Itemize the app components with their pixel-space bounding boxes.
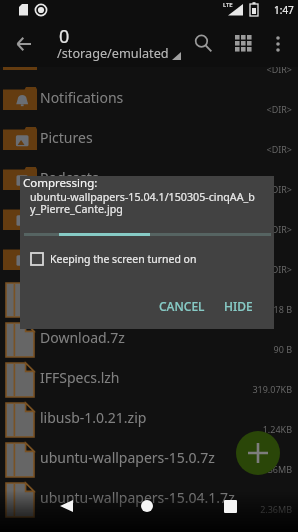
button[interactable]: Documents: [0, 278, 298, 318]
staticText: Music: [40, 248, 79, 267]
staticText: 1.24KB: [262, 423, 292, 435]
staticText: HIDE: [224, 298, 253, 314]
staticText: Keeping the screen turned on: [50, 252, 197, 266]
staticText: Compressing:: [23, 175, 98, 191]
button[interactable]: Pictures: [0, 118, 298, 158]
staticText: <DIR>: [266, 263, 292, 275]
staticText: <DIR>: [266, 103, 292, 115]
staticText: IFFSpecs.lzh: [40, 368, 120, 387]
staticText: Pictures: [40, 128, 93, 147]
staticText: 319.07KB: [252, 383, 292, 395]
staticText: <DIR>: [266, 63, 292, 75]
staticText: <DIR>: [266, 183, 292, 195]
staticText: 1:47: [274, 3, 294, 17]
button[interactable]: View mode: [226, 20, 259, 67]
button[interactable]: Back: [46, 496, 86, 516]
button[interactable]: libusb-1.0.21.zip: [0, 398, 298, 438]
button[interactable]: Home: [127, 496, 167, 516]
button[interactable]: Notifications: [0, 78, 298, 118]
staticText: CANCEL: [159, 298, 205, 314]
staticText: ubuntu-wallpapers-15.0.7z: [40, 448, 215, 467]
staticText: 90 B: [273, 343, 292, 355]
button[interactable]: HIDE: [218, 294, 259, 318]
staticText: /storage/emulated: [57, 44, 169, 61]
button[interactable]: Movies: [0, 38, 298, 78]
button[interactable]: Ringtones: [0, 198, 298, 238]
button[interactable]: Keeping the screen turned on: [30, 249, 197, 269]
button[interactable]: Add: [236, 431, 280, 475]
staticText: LTE: [223, 1, 233, 9]
staticText: <DIR>: [266, 143, 292, 155]
staticText: 18 B: [273, 303, 292, 315]
staticText: 2.36MB: [260, 463, 292, 475]
staticText: Podcasts: [40, 168, 99, 187]
staticText: <DIR>: [266, 223, 292, 235]
staticText: 0: [59, 24, 70, 49]
button[interactable]: Download.7z: [0, 318, 298, 358]
button[interactable]: More options: [261, 20, 294, 67]
staticText: Ringtones: [40, 208, 107, 227]
button[interactable]: ubuntu-wallpapers-15.0.7z: [0, 438, 298, 478]
staticText: libusb-1.0.21.zip: [40, 408, 147, 427]
staticText: ubuntu-wallpapers-15.04.1/150305-cinqAA_…: [30, 190, 276, 217]
staticText: Download.7z: [40, 328, 125, 347]
button[interactable]: Recent apps: [210, 496, 250, 516]
button[interactable]: Podcasts: [0, 158, 298, 198]
button[interactable]: Back: [7, 20, 40, 67]
button[interactable]: CANCEL: [153, 294, 211, 318]
staticText: Movies: [40, 48, 87, 67]
staticText: ubuntu-wallpapers-15.04.1.7z: [40, 488, 235, 507]
button[interactable]: Search: [187, 20, 220, 67]
staticText: Notifications: [40, 88, 124, 107]
button[interactable]: Music: [0, 238, 298, 278]
button[interactable]: ubuntu-wallpapers-15.04.1.7z: [0, 478, 298, 518]
staticText: 2.36MB: [260, 503, 292, 515]
button[interactable]: IFFSpecs.lzh: [0, 358, 298, 398]
